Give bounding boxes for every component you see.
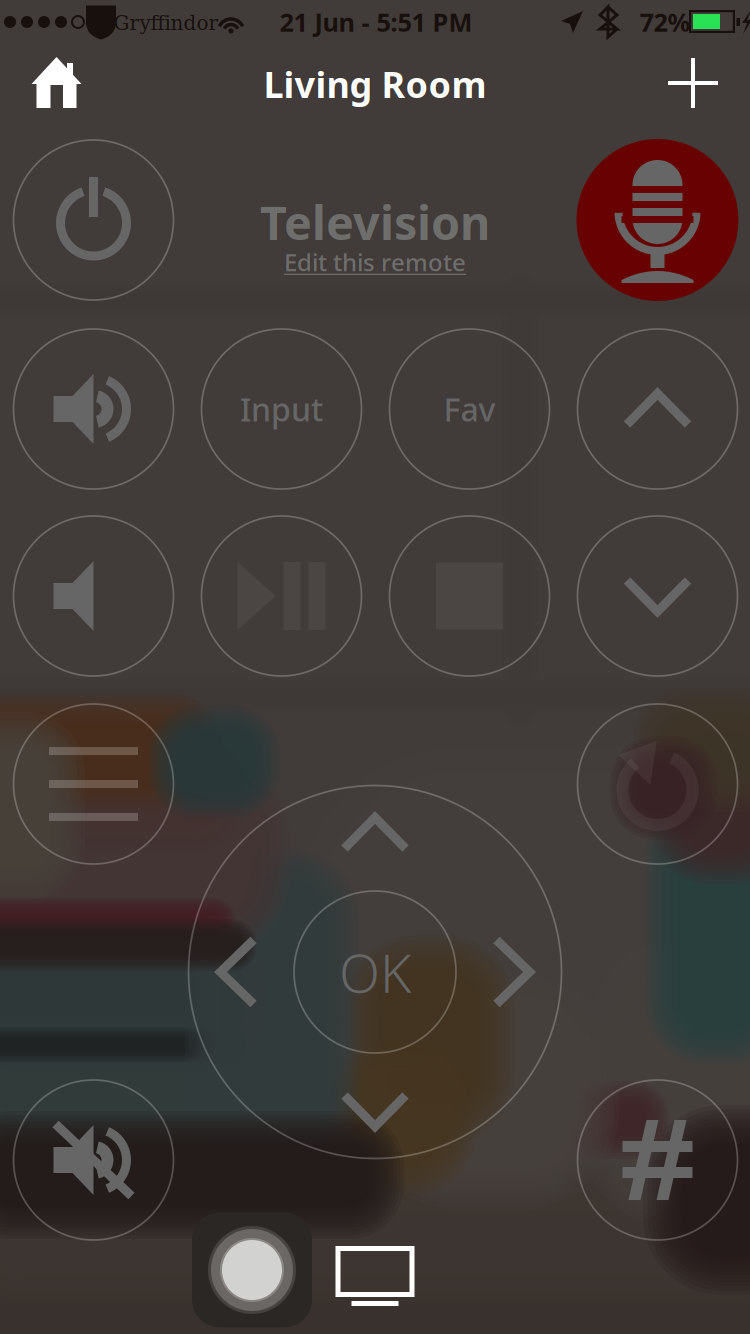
staticText: Gryffindor <box>113 11 218 35</box>
button[interactable]: Volume up <box>13 329 173 489</box>
staticText: 72% <box>639 5 690 39</box>
button[interactable]: Power <box>13 140 173 300</box>
button[interactable]: Channel down <box>577 516 737 676</box>
button[interactable]: Rotate <box>577 704 737 864</box>
button[interactable]: Right <box>490 935 535 1009</box>
button[interactable]: Menu <box>13 704 173 864</box>
staticText: 21 Jun - 5:51 PM <box>279 5 472 39</box>
staticText: Living Room <box>263 60 486 108</box>
staticText: OK <box>339 937 411 1007</box>
button[interactable]: Up <box>339 812 411 854</box>
button[interactable]: Down <box>339 1090 411 1132</box>
button[interactable]: Remote <box>192 1212 312 1327</box>
button[interactable]: Volume down <box>13 516 173 676</box>
staticText: Television <box>260 191 490 253</box>
button[interactable]: Left <box>214 935 259 1009</box>
button[interactable]: Channel up <box>577 329 737 489</box>
button[interactable]: Play or pause <box>201 516 361 676</box>
button[interactable]: OK <box>294 891 456 1053</box>
button[interactable]: Mute <box>13 1080 173 1240</box>
button[interactable]: Voice control <box>576 139 738 301</box>
button[interactable]: Edit this remote <box>284 246 466 278</box>
staticText: Fav <box>443 388 495 430</box>
button[interactable]: Add device <box>668 58 718 108</box>
button[interactable]: Home <box>31 57 82 109</box>
staticText: Edit this remote <box>284 246 466 278</box>
button[interactable]: Keypad <box>577 1080 737 1240</box>
button[interactable]: Favourites <box>389 329 549 489</box>
button[interactable]: Stop <box>389 516 549 676</box>
staticText: Input <box>240 388 323 430</box>
button[interactable]: Input <box>201 329 361 489</box>
button[interactable]: Devices <box>335 1246 414 1306</box>
